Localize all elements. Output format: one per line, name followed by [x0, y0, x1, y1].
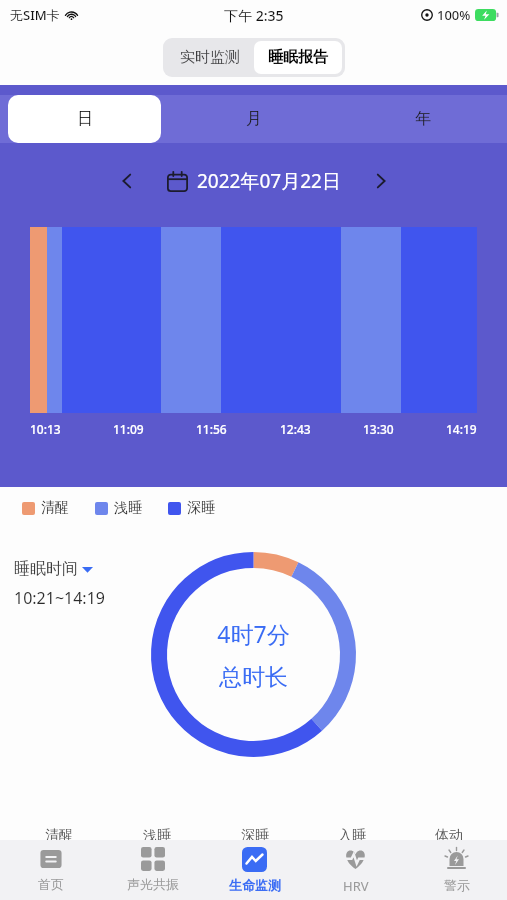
staticText: HRV: [343, 877, 369, 895]
staticText: 11:09: [113, 421, 144, 437]
staticText: 2022年07月22日: [197, 168, 341, 194]
staticText: 日: [77, 109, 93, 129]
staticText: 睡眠时间: [14, 559, 78, 579]
staticText: 浅睡: [114, 499, 142, 517]
staticText: 清醒: [41, 499, 69, 517]
staticText: 生命监测: [229, 877, 281, 893]
staticText: 无SIM卡: [10, 6, 60, 24]
staticText: 体动: [435, 827, 463, 840]
staticText: 12:43: [280, 421, 311, 437]
button[interactable]: 睡眠报告: [254, 41, 342, 74]
button[interactable]: 年: [338, 95, 507, 143]
button[interactable]: 睡眠时间: [14, 559, 93, 579]
button[interactable]: 月: [169, 95, 338, 143]
button[interactable]: Next day: [361, 161, 401, 201]
staticText: 14:19: [446, 421, 477, 437]
button[interactable]: 2022年07月22日: [167, 168, 341, 194]
button[interactable]: 生命监测: [204, 840, 305, 900]
staticText: 总时长: [219, 663, 288, 692]
staticText: 深睡: [241, 827, 269, 840]
staticText: 10:13: [30, 421, 61, 437]
button[interactable]: 声光共振: [102, 840, 204, 900]
staticText: 月: [246, 109, 262, 129]
button[interactable]: 日: [8, 95, 161, 143]
staticText: 警示: [444, 877, 470, 893]
staticText: 10:21~14:19: [14, 587, 105, 609]
staticText: 浅睡: [143, 827, 171, 840]
staticText: 首页: [38, 876, 64, 892]
staticText: 睡眠报告: [268, 48, 328, 67]
staticText: 年: [415, 109, 431, 129]
staticText: 4时7分: [217, 618, 290, 649]
staticText: 实时监测: [180, 48, 240, 67]
staticText: 下午 2:35: [224, 6, 284, 25]
staticText: 入睡: [338, 827, 366, 840]
staticText: 深睡: [187, 499, 215, 517]
button[interactable]: Previous day: [107, 161, 147, 201]
button[interactable]: 警示: [406, 840, 507, 900]
staticText: 声光共振: [127, 876, 179, 892]
button[interactable]: 实时监测: [166, 41, 254, 74]
button[interactable]: 首页: [0, 840, 102, 900]
button[interactable]: HRV: [305, 840, 406, 900]
staticText: 13:30: [363, 421, 394, 437]
staticText: 100%: [437, 6, 471, 24]
staticText: 清醒: [45, 827, 73, 840]
staticText: 11:56: [196, 421, 227, 437]
